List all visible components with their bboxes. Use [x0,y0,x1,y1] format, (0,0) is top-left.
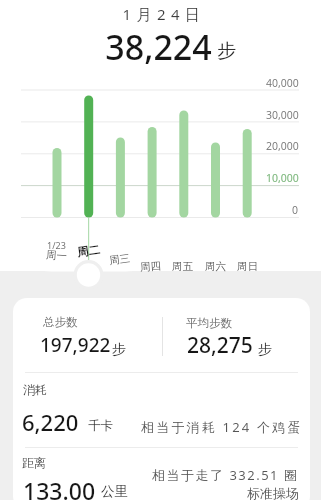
button[interactable]: 周五 [102,251,262,281]
staticText: 步 [112,341,126,359]
staticText: 周四 [140,259,161,274]
staticText: 6,220 [22,407,79,437]
staticText: 周六 [205,260,226,273]
staticText: 千卡 [88,418,113,434]
button[interactable]: 周三 [39,244,199,274]
staticText: 步 [217,39,236,63]
staticText: 周二 [76,242,101,259]
staticText: 公里 [101,483,128,500]
staticText: 周三 [108,251,131,267]
staticText: 相当于走了 332.51 圈 [152,466,299,484]
staticText: 1/23 [47,239,66,251]
staticText: 28,275 [187,331,253,360]
button[interactable]: 周六 [135,251,295,281]
staticText: 1月24日 [122,4,206,24]
staticText: 0 [292,203,299,217]
staticText: 20,000 [266,139,299,153]
staticText: 相当于消耗 124 个鸡蛋 [141,418,303,436]
button[interactable]: 周日 [167,251,321,281]
staticText: 197,922 [40,332,111,358]
staticText: 40,000 [266,76,299,90]
button[interactable]: 周四 [70,251,230,281]
staticText: 30,000 [266,108,299,122]
staticText: 10,000 [266,171,299,185]
button[interactable]: 周二 [8,236,168,266]
staticText: 距离 [22,455,46,470]
staticText: 周日 [237,260,258,273]
staticText: 周一 [45,248,67,263]
staticText: 总步数 [43,315,78,329]
staticText: 平均步数 [186,316,232,330]
staticText: 38,224 [105,24,212,70]
staticText: 标准操场 [247,485,299,500]
button[interactable]: 周一 [0,240,136,270]
staticText: 133.00 [23,475,96,500]
staticText: 周五 [172,260,193,273]
staticText: 步 [258,341,272,359]
staticText: 消耗 [23,382,47,397]
